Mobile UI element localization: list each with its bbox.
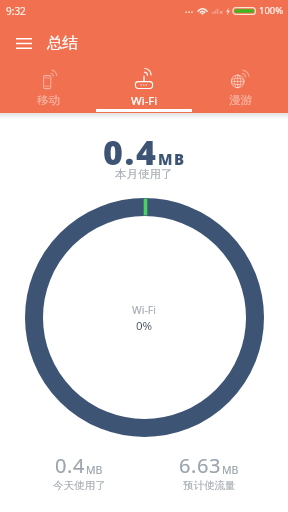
staticText: 今天使用了	[53, 479, 106, 492]
staticText: Wi-Fi	[132, 303, 157, 317]
staticText: 0%	[136, 318, 153, 334]
button[interactable]: 移动	[0, 64, 96, 113]
staticText: MB	[222, 463, 239, 477]
button[interactable]: 6.63	[144, 452, 274, 492]
staticText: 100%	[259, 4, 284, 17]
staticText: 0.4	[55, 452, 86, 479]
staticText: 0.4	[103, 129, 158, 175]
staticText: 6.63	[179, 452, 222, 479]
button[interactable]: 0.4	[14, 452, 144, 492]
staticText: Wi-Fi	[131, 93, 158, 109]
button[interactable]: Open navigation menu	[6, 25, 42, 61]
staticText: 总结	[47, 33, 78, 53]
staticText: MB	[158, 149, 186, 169]
staticText: 漫游	[229, 93, 252, 107]
staticText: 预计使流量	[183, 479, 236, 492]
staticText: MB	[86, 463, 103, 477]
staticText: 移动	[37, 93, 60, 107]
staticText: 9:32	[6, 4, 26, 18]
button[interactable]: Wi-Fi	[96, 64, 192, 113]
button[interactable]: 漫游	[192, 64, 288, 113]
staticText: 本月使用了	[115, 167, 173, 181]
